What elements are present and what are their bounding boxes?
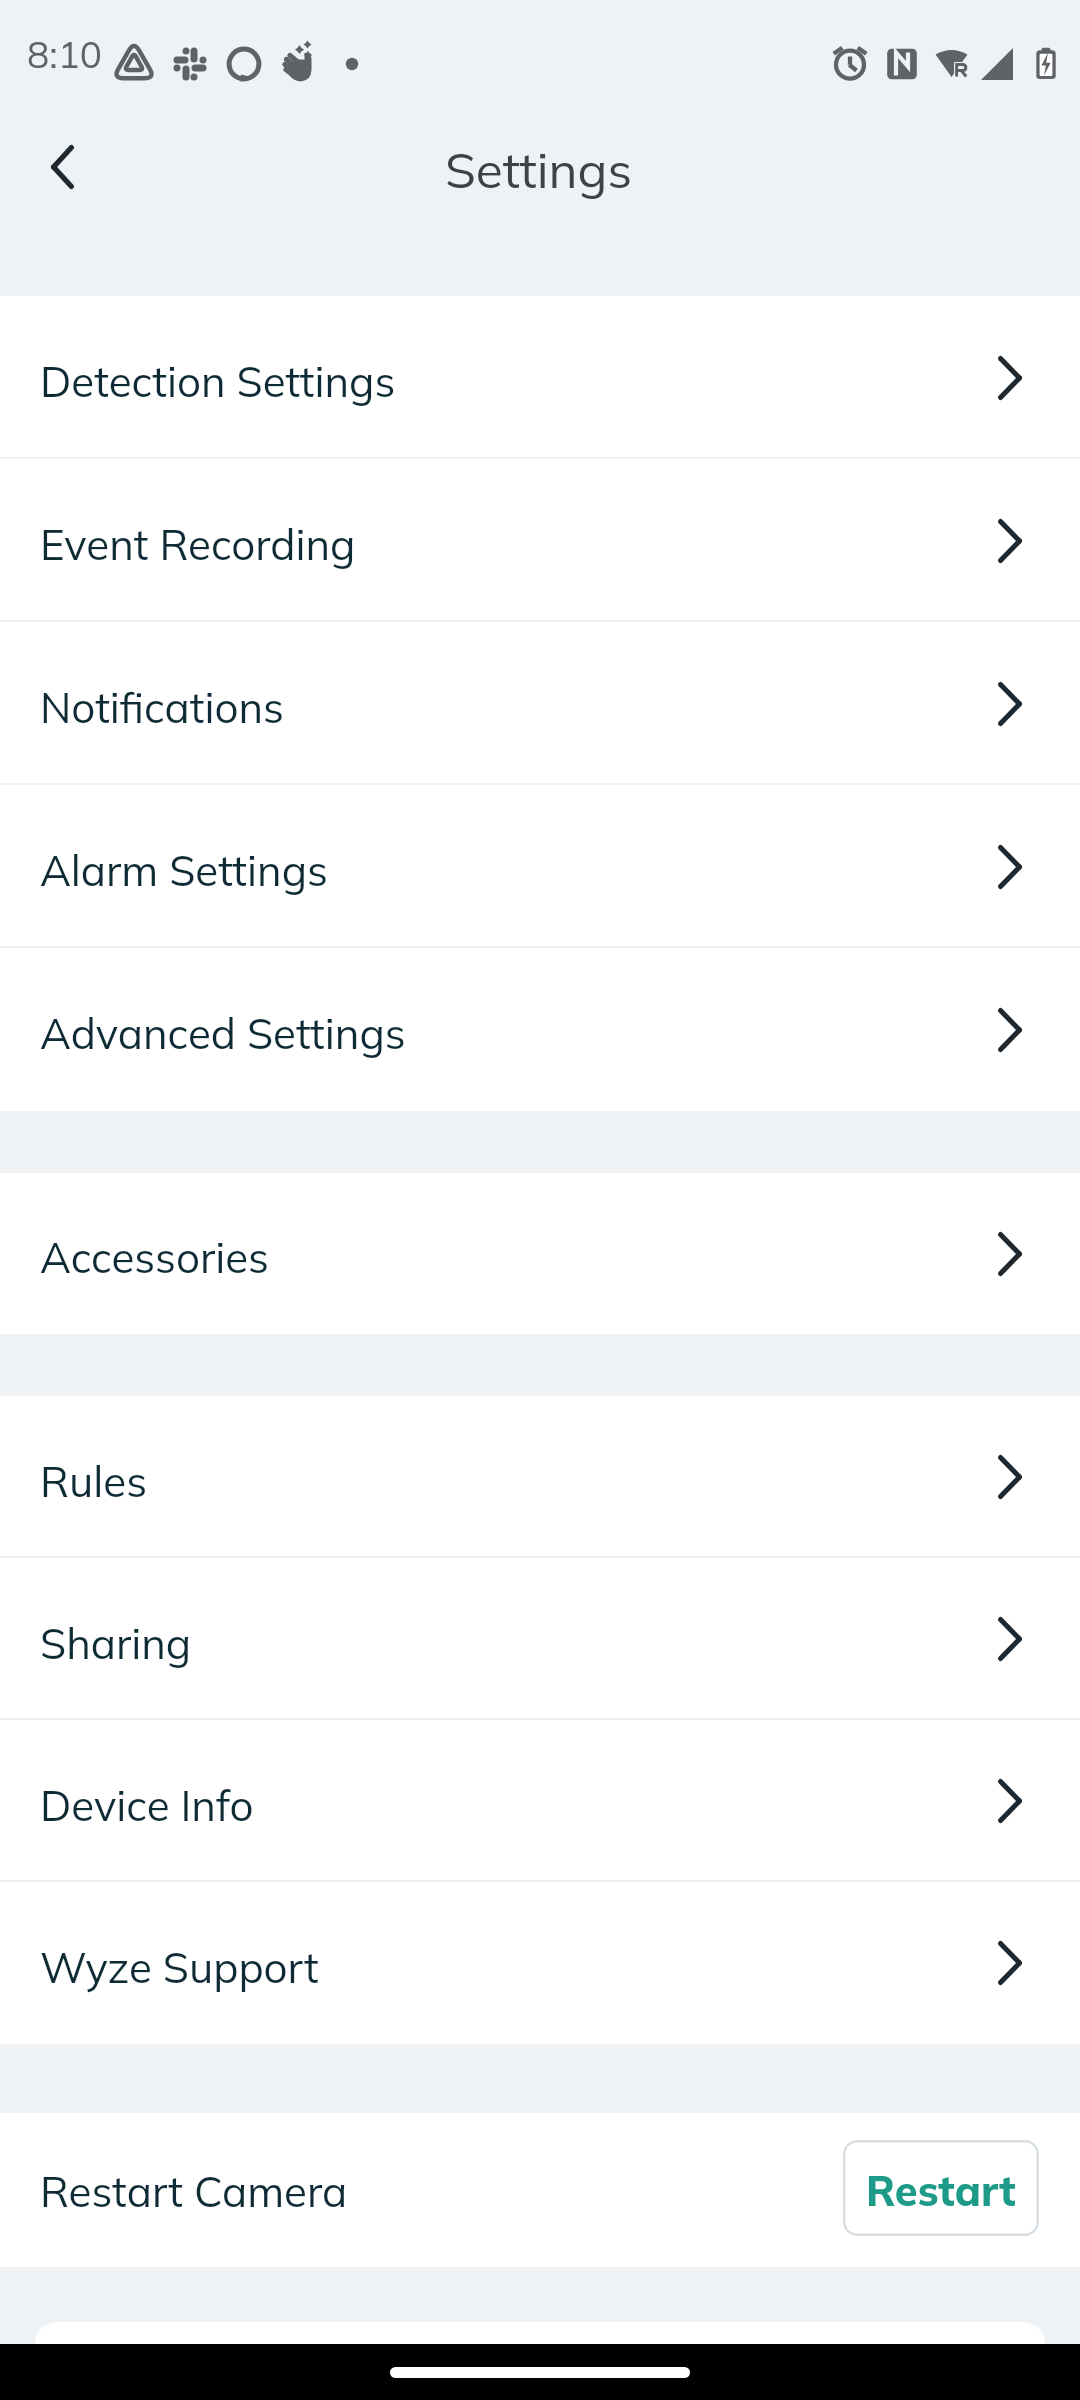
button[interactable]: Rules [0, 1396, 1080, 1558]
button[interactable]: Back [19, 124, 105, 210]
staticText: Restart [866, 2164, 1016, 2216]
button[interactable]: Detection Settings [0, 296, 1080, 459]
button[interactable]: Advanced Settings [0, 948, 1080, 1111]
staticText: Event Recording [40, 518, 356, 571]
button[interactable]: Device Info [0, 1720, 1080, 1882]
staticText: Rules [40, 1455, 147, 1508]
staticText: Detection Settings [40, 355, 396, 408]
button[interactable]: Alarm Settings [0, 785, 1080, 948]
staticText: Device Info [40, 1779, 254, 1832]
staticText: Notifications [40, 681, 284, 734]
button[interactable]: Wyze Support [0, 1882, 1080, 2044]
button[interactable]: Accessories [0, 1173, 1080, 1334]
button[interactable]: Restart [843, 2140, 1039, 2236]
staticText: Advanced Settings [40, 1007, 406, 1060]
button[interactable]: Event Recording [0, 459, 1080, 622]
staticText: Accessories [40, 1231, 269, 1284]
staticText: Sharing [40, 1617, 192, 1670]
staticText: 8:10 [27, 31, 103, 77]
staticText: Settings [445, 138, 632, 200]
button[interactable]: Notifications [0, 622, 1080, 785]
button[interactable]: Sharing [0, 1558, 1080, 1720]
staticText: Alarm Settings [40, 844, 328, 897]
staticText: Wyze Support [40, 1941, 319, 1994]
staticText: Restart Camera [40, 2165, 348, 2218]
